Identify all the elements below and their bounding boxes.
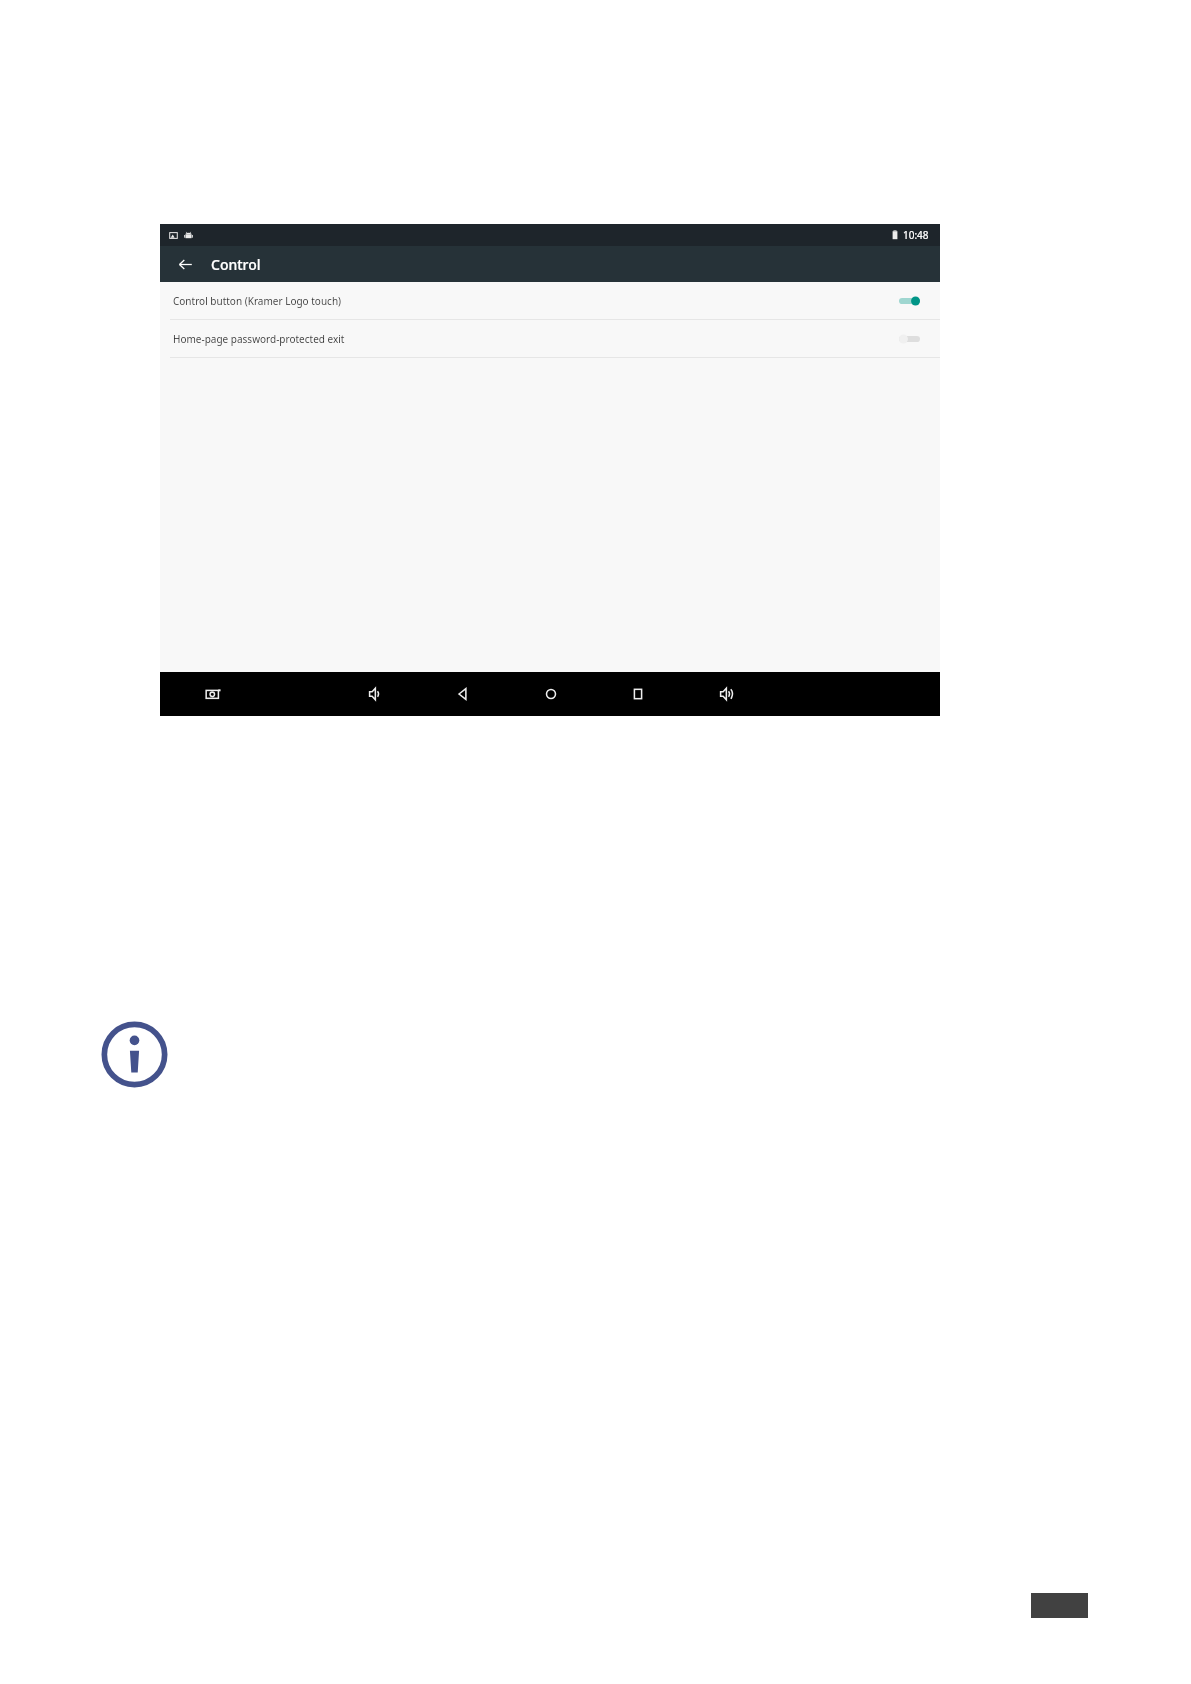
button[interactable]: Home-page password-protected exit [160, 320, 940, 358]
staticText: Control button (Kramer Logo touch) [173, 294, 342, 308]
button[interactable]: Volume up [708, 672, 744, 716]
button[interactable]: Screenshot [195, 672, 231, 716]
staticText: 10:48 [903, 228, 929, 242]
button[interactable]: Control button (Kramer Logo touch) [160, 282, 940, 320]
button[interactable]: Back [174, 253, 196, 275]
button[interactable]: Home [533, 672, 569, 716]
staticText: Home-page password-protected exit [173, 332, 345, 346]
button[interactable]: Volume down [357, 672, 393, 716]
button[interactable]: Back [445, 672, 481, 716]
button[interactable]: Recent apps [620, 672, 656, 716]
staticText: Control [211, 255, 261, 274]
